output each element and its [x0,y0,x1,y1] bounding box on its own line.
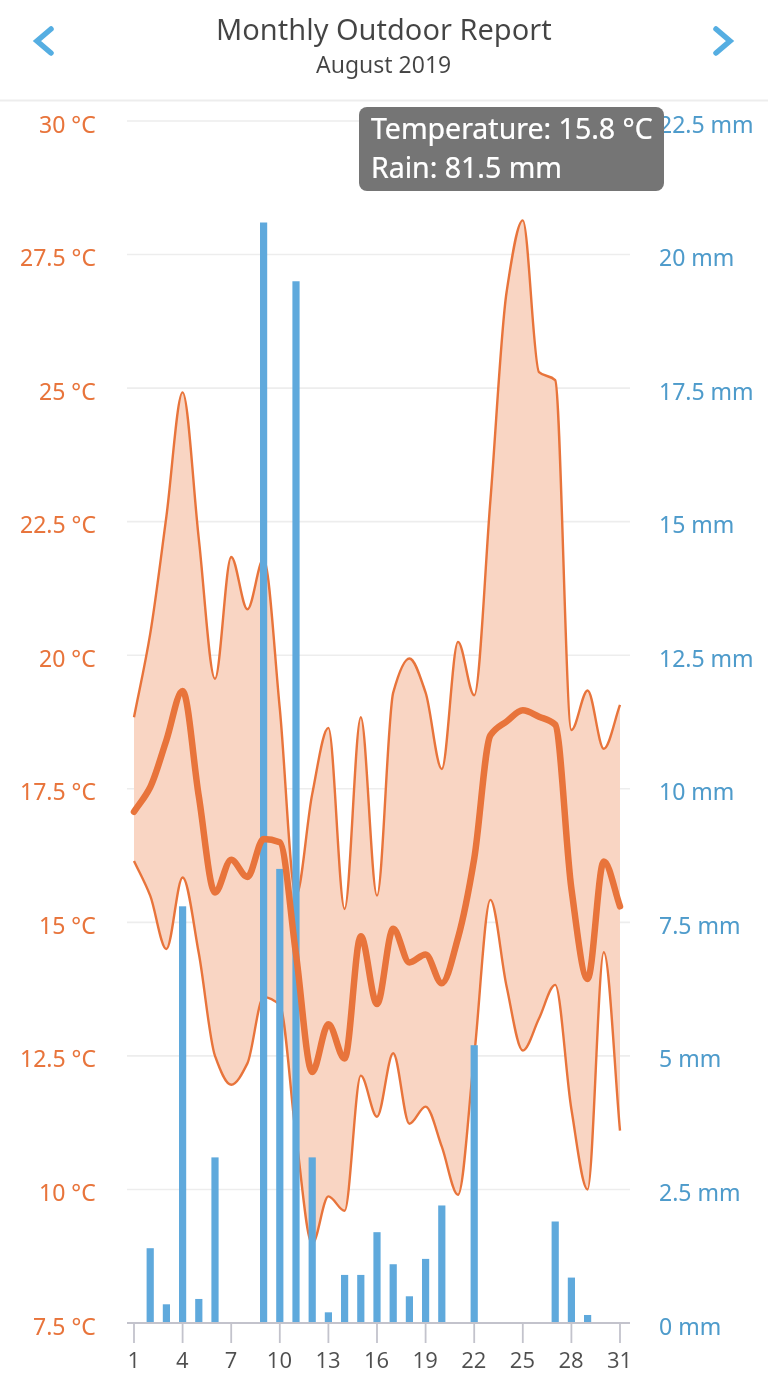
button[interactable]: Previous month [16,11,60,55]
staticText: Temperature: 15.8 °C [371,109,653,148]
button[interactable]: Next month [708,11,752,55]
staticText: Rain: 81.5 mm [371,148,562,187]
